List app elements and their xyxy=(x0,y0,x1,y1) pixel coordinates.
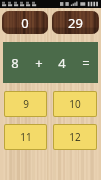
button[interactable]: 10 xyxy=(54,92,96,116)
staticText: 9 xyxy=(23,97,29,111)
button[interactable]: 12 xyxy=(54,125,96,149)
button[interactable]: 9 xyxy=(5,92,46,116)
button[interactable]: Score 0 xyxy=(2,11,48,34)
staticText: 8 xyxy=(11,54,19,72)
staticText: 11 xyxy=(20,130,32,144)
staticText: 10 xyxy=(69,97,81,111)
staticText: = xyxy=(82,54,90,72)
staticText: 4 xyxy=(58,54,66,72)
button[interactable]: Score 29 xyxy=(52,11,99,34)
staticText: + xyxy=(35,54,43,72)
staticText: 12 xyxy=(69,130,81,144)
button[interactable]: 11 xyxy=(5,125,46,149)
staticText: 0 xyxy=(21,14,29,32)
staticText: 29 xyxy=(68,14,83,32)
